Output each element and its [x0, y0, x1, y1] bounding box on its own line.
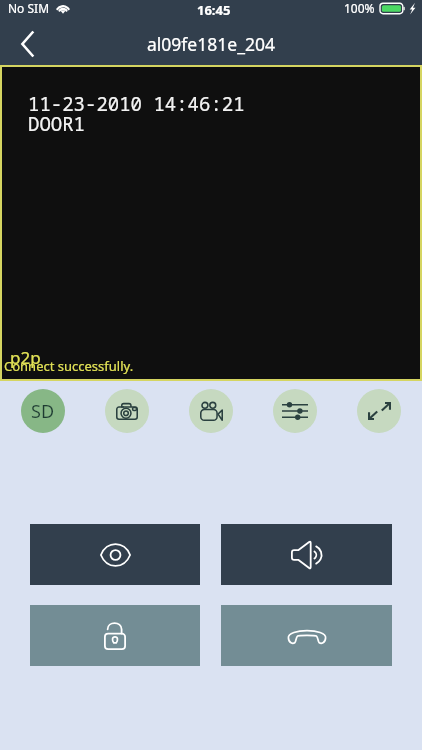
- button[interactable]: Hang up: [221, 605, 392, 666]
- button[interactable]: Speaker: [221, 524, 392, 585]
- button[interactable]: Full screen: [357, 389, 401, 433]
- staticText: Connect successfully.: [4, 357, 134, 375]
- button[interactable]: Back: [8, 24, 48, 64]
- staticText: 100%: [344, 0, 375, 16]
- staticText: p2p: [10, 346, 41, 369]
- button[interactable]: SD video quality: [21, 389, 65, 433]
- staticText: 16:45: [197, 1, 231, 19]
- staticText: 11-23-2010 14:46:21 DOOR1: [28, 91, 245, 137]
- staticText: No SIM: [8, 0, 50, 16]
- button[interactable]: Record video: [189, 389, 233, 433]
- button[interactable]: Adjust settings: [273, 389, 317, 433]
- button[interactable]: Unlock door: [30, 605, 200, 666]
- button[interactable]: View camera: [30, 524, 200, 585]
- button[interactable]: Take snapshot: [105, 389, 149, 433]
- staticText: SD: [31, 399, 55, 424]
- staticText: al09fe181e_204: [147, 32, 275, 56]
